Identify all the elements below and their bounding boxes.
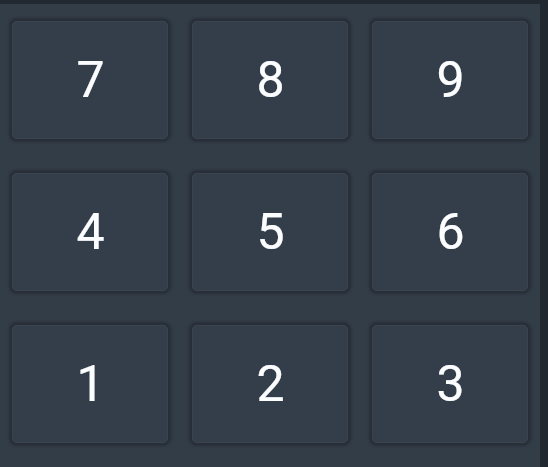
staticText: 6 [436, 203, 465, 262]
staticText: 4 [76, 203, 105, 262]
button[interactable]: 1 [11, 324, 169, 444]
button[interactable]: 9 [371, 20, 529, 140]
button[interactable]: 7 [11, 20, 169, 140]
button[interactable]: 3 [371, 324, 529, 444]
button[interactable]: 5 [191, 172, 349, 292]
button[interactable]: 2 [191, 324, 349, 444]
staticText: 9 [436, 51, 465, 110]
button[interactable]: 8 [191, 20, 349, 140]
button[interactable]: 4 [11, 172, 169, 292]
button[interactable]: 6 [371, 172, 529, 292]
staticText: 7 [76, 51, 105, 110]
staticText: 5 [256, 203, 285, 262]
staticText: 8 [256, 51, 285, 110]
staticText: 3 [436, 355, 465, 414]
staticText: 2 [256, 355, 285, 414]
staticText: 1 [76, 355, 105, 414]
